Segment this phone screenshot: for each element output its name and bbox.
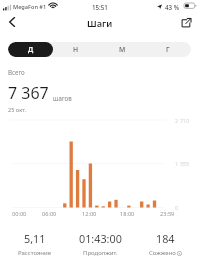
button[interactable]: Н <box>53 42 99 57</box>
button[interactable]: Д <box>8 42 53 57</box>
staticText: Сожжено <box>149 249 176 257</box>
staticText: 01:43:00 <box>79 231 122 246</box>
staticText: Д <box>28 45 34 54</box>
staticText: 23:59 <box>160 210 175 218</box>
staticText: 0 <box>175 204 179 212</box>
button[interactable]: 01:43:00 <box>68 231 133 257</box>
staticText: 25 окт. <box>8 106 27 114</box>
button[interactable]: 5,11 <box>2 231 68 257</box>
staticText: 06:00 <box>42 210 57 218</box>
staticText: 00:00 <box>12 210 27 218</box>
button[interactable]: М <box>99 42 145 57</box>
staticText: 12:00 <box>82 210 97 218</box>
button[interactable]: Back <box>1 12 22 32</box>
button[interactable]: Share <box>176 12 196 32</box>
staticText: Всего <box>8 68 25 76</box>
staticText: Г <box>166 45 170 54</box>
staticText: MegaFon #1 <box>13 3 47 11</box>
button[interactable]: Г <box>145 42 191 57</box>
staticText: М <box>119 45 126 54</box>
staticText: Расстояние <box>18 249 52 257</box>
staticText: 15:51 <box>92 3 108 11</box>
staticText: 5,11 <box>24 231 46 246</box>
staticText: 18:00 <box>120 210 135 218</box>
staticText: 1 355 <box>175 160 190 168</box>
staticText: Н <box>73 45 79 54</box>
staticText: 2 710 <box>175 117 190 125</box>
staticText: шагов <box>53 94 72 102</box>
staticText: 7 367 <box>8 82 49 104</box>
staticText: 184 <box>156 231 175 246</box>
staticText: Шаги <box>87 17 113 30</box>
button[interactable]: 184 <box>133 231 198 257</box>
staticText: 43 % <box>165 3 179 11</box>
staticText: Продолжит. <box>83 249 118 257</box>
